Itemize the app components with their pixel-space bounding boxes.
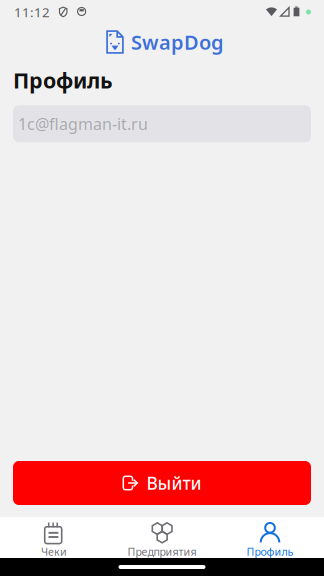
staticText: Выйти	[146, 471, 201, 494]
button[interactable]: Чеки	[0, 517, 108, 558]
staticText: 1c@flagman-it.ru	[18, 113, 148, 134]
staticText: SwapDog	[131, 29, 224, 55]
button[interactable]: Выйти	[13, 461, 311, 505]
staticText: Чеки	[41, 544, 67, 559]
button[interactable]: Профиль	[216, 517, 324, 558]
staticText: Профиль	[13, 66, 113, 94]
button[interactable]: Предприятия	[108, 517, 216, 558]
staticText: 11:12	[14, 3, 50, 21]
staticText: Профиль	[246, 544, 293, 559]
staticText: Предприятия	[127, 544, 196, 559]
